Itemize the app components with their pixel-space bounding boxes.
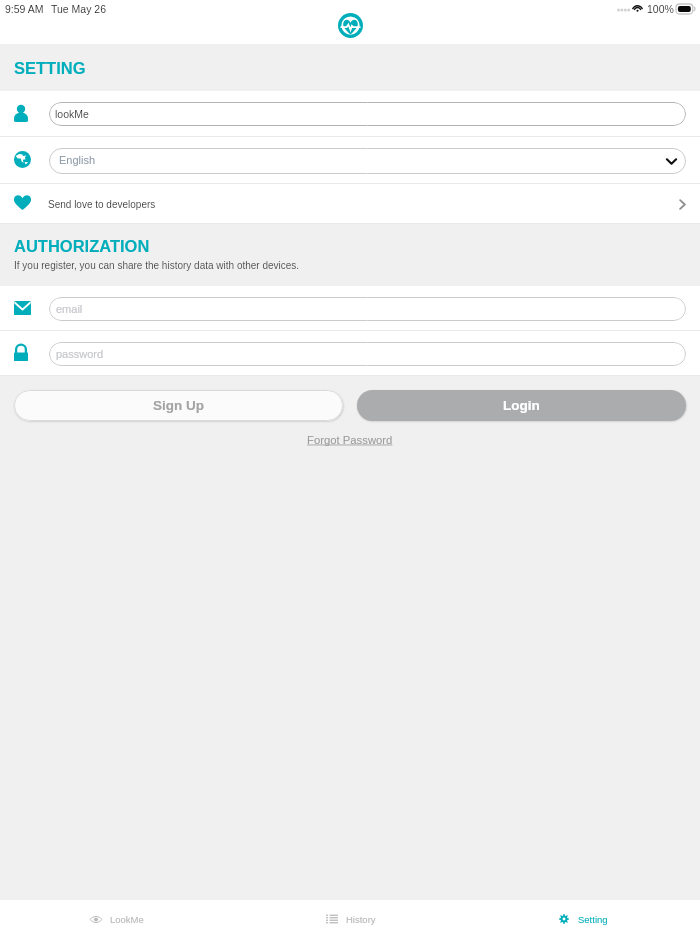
staticText: AUTHORIZATION (14, 237, 150, 255)
staticText: Setting (578, 914, 608, 925)
staticText: If you register, you can share the histo… (14, 260, 300, 271)
button[interactable]: History (234, 900, 467, 934)
staticText: lookMe (55, 108, 89, 120)
staticText: 100% (647, 3, 674, 15)
button[interactable]: LookMe (0, 900, 234, 934)
staticText: Login (503, 398, 540, 413)
button[interactable]: Setting (467, 900, 700, 934)
staticText: English (59, 154, 96, 166)
staticText: LookMe (110, 914, 144, 925)
button[interactable]: Password (49, 342, 686, 366)
staticText: Sign Up (153, 398, 204, 413)
button[interactable]: Send love to developers (0, 184, 700, 224)
button[interactable]: Login (357, 390, 686, 421)
button[interactable]: Forgot Password (307, 434, 393, 447)
staticText: History (346, 914, 376, 925)
button[interactable]: Email (49, 297, 686, 321)
staticText: 9:59 AM (5, 3, 44, 15)
staticText: Send love to developers (48, 199, 156, 210)
button[interactable]: Sign Up (14, 390, 343, 421)
staticText: SETTING (14, 59, 86, 77)
staticText: email (56, 303, 83, 315)
button[interactable]: User name (49, 102, 686, 126)
button[interactable]: English (0, 137, 700, 184)
staticText: Tue May 26 (51, 3, 107, 15)
staticText: password (56, 348, 104, 360)
